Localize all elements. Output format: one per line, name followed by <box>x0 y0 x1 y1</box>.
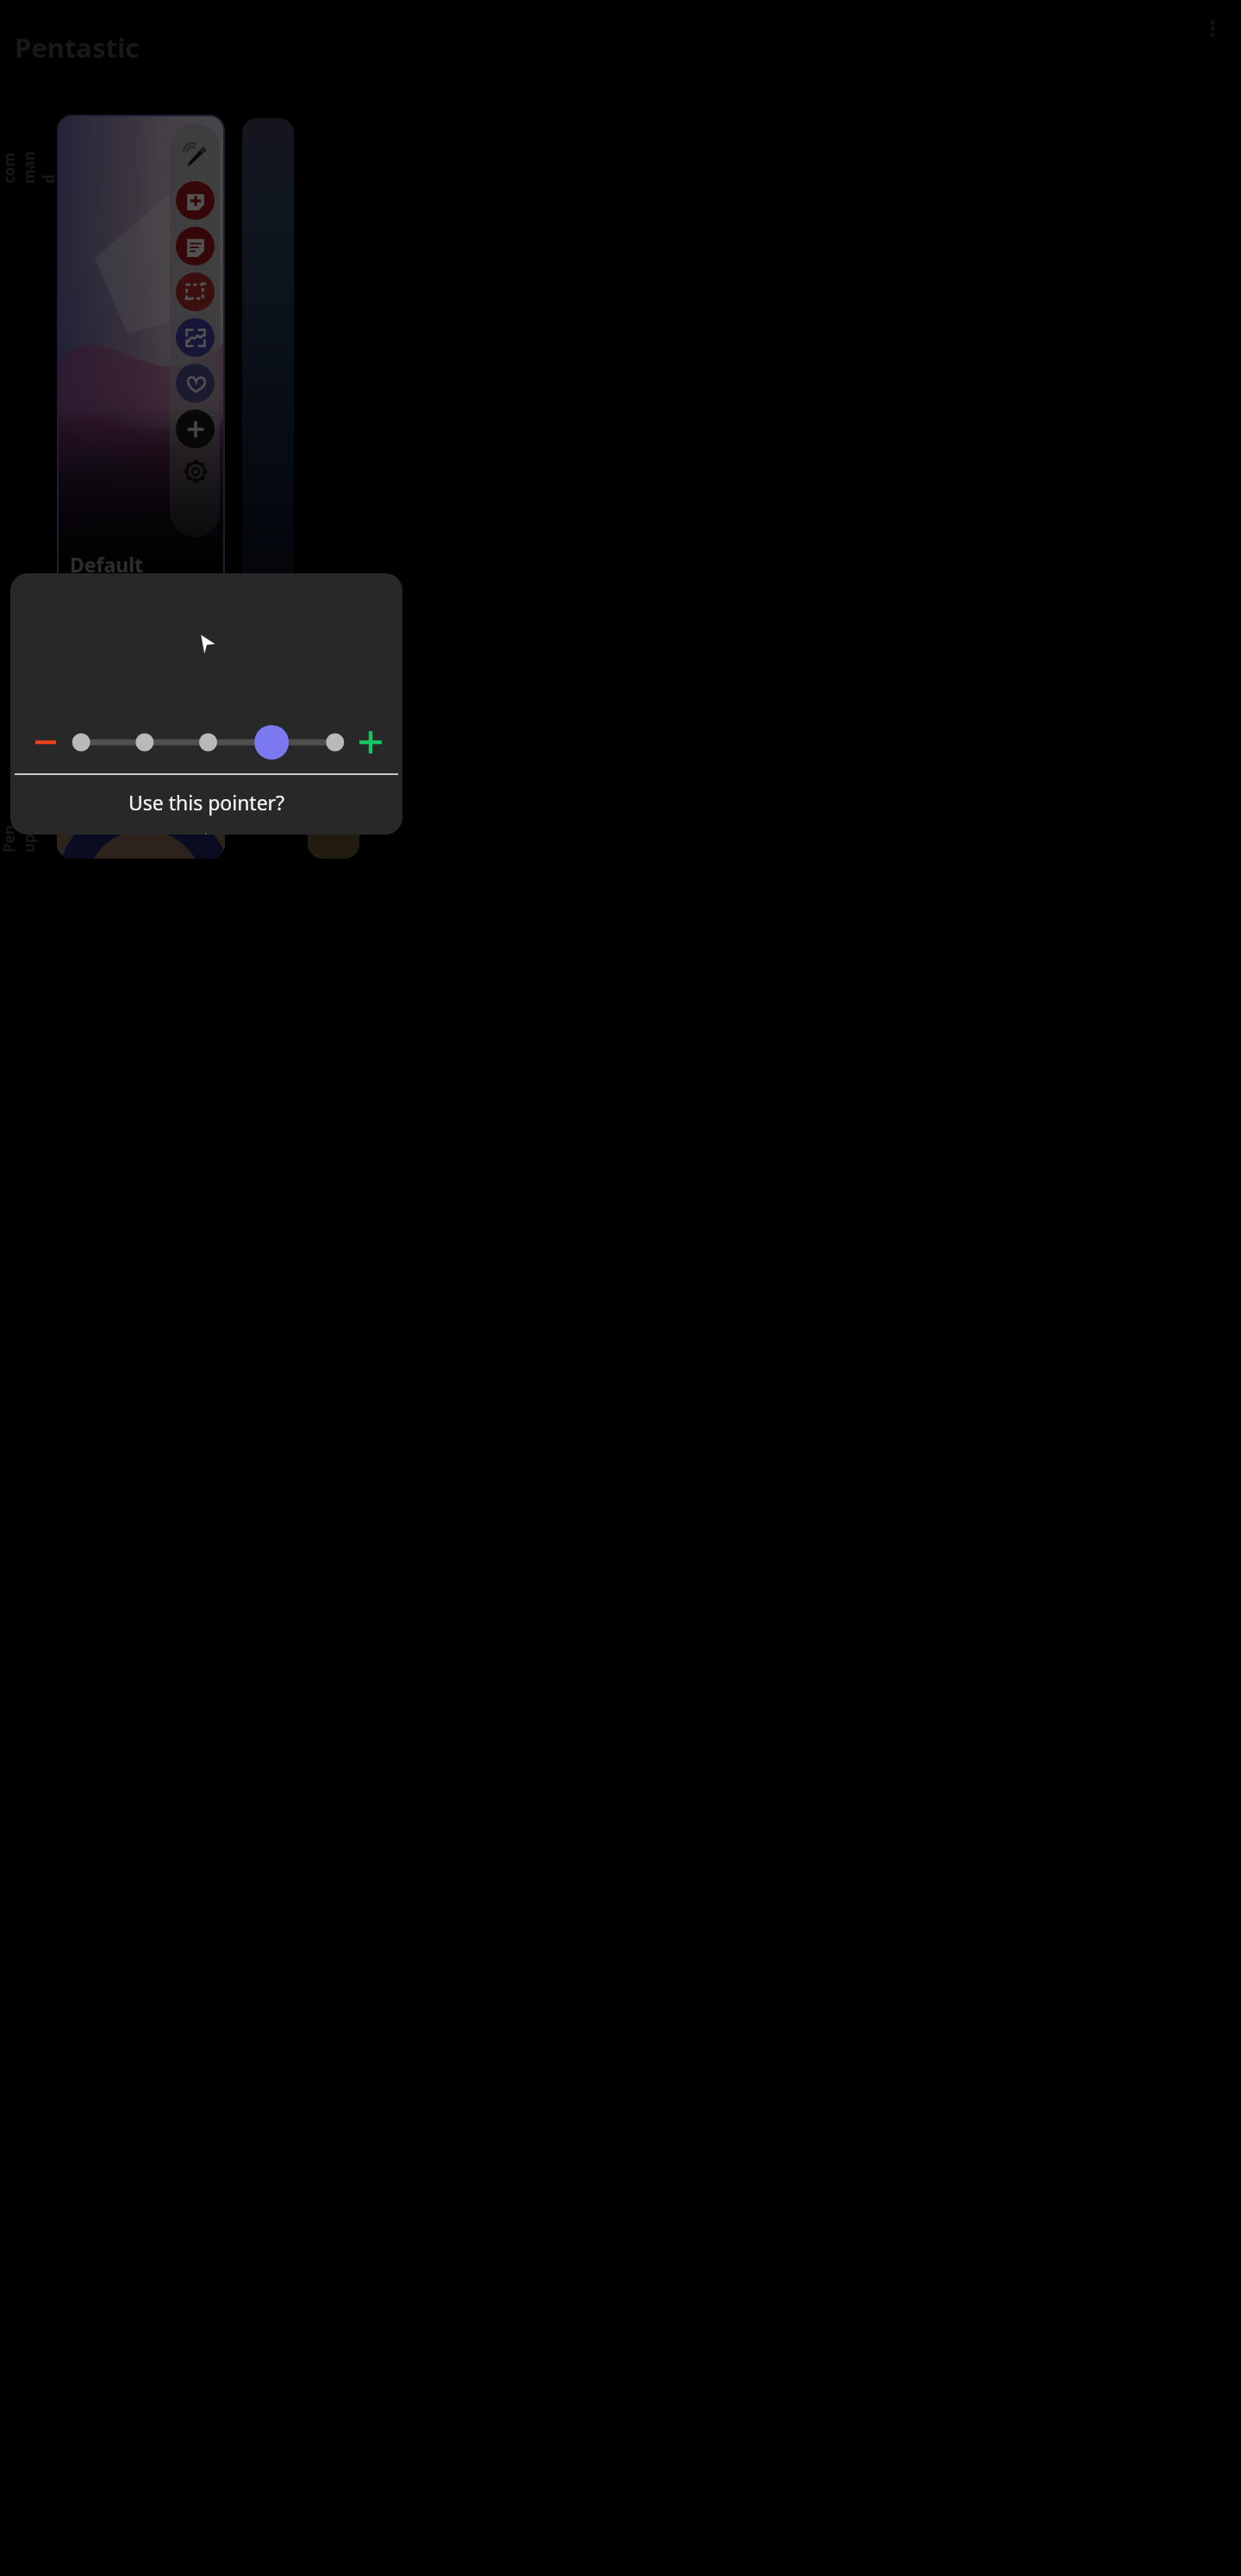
staticText: Default <box>70 551 144 578</box>
staticText: Pen up <box>0 815 39 853</box>
button[interactable]: Air command action <box>176 452 215 491</box>
button[interactable]: Air command action <box>176 272 215 311</box>
staticText: Pentastic <box>15 29 140 66</box>
button[interactable]: Air command action <box>57 115 225 591</box>
button[interactable]: Air command action <box>176 181 215 220</box>
button[interactable]: Air command action <box>176 318 215 357</box>
button[interactable] <box>308 810 359 859</box>
staticText: Air command <box>0 146 59 184</box>
button[interactable]: Air command action <box>176 227 215 266</box>
button[interactable] <box>65 722 351 762</box>
button[interactable]: Use <box>207 823 402 835</box>
button[interactable]: Air command action <box>176 410 215 448</box>
button[interactable]: Air command action <box>176 135 215 174</box>
button[interactable]: Decrease size <box>26 722 65 762</box>
button[interactable] <box>57 810 225 859</box>
button[interactable]: Increase size <box>351 722 390 762</box>
staticText: Use this pointer? <box>10 789 402 816</box>
button[interactable]: Air command action <box>176 364 215 403</box>
button[interactable]: Cancel <box>10 823 205 835</box>
button[interactable] <box>242 118 294 588</box>
